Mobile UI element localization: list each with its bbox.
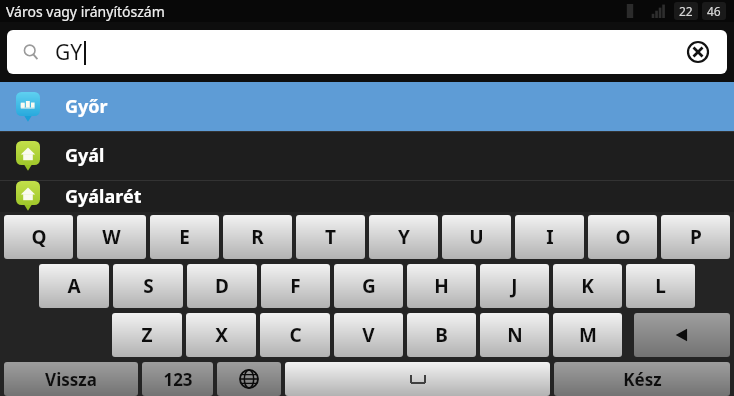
staticText: Y xyxy=(398,224,410,250)
staticText: Város vagy irányítószám xyxy=(6,2,165,21)
button[interactable]: G xyxy=(334,264,403,308)
staticText: L xyxy=(655,273,666,299)
staticText: X xyxy=(215,322,228,348)
staticText: Q xyxy=(31,224,47,250)
staticText: U xyxy=(469,224,484,250)
button[interactable]: D xyxy=(187,264,257,308)
staticText: K xyxy=(581,273,594,299)
staticText: W xyxy=(102,224,121,250)
staticText: R xyxy=(251,224,264,250)
staticText: V xyxy=(362,322,375,348)
button[interactable]: C xyxy=(260,313,330,357)
staticText: J xyxy=(511,273,518,299)
button[interactable]: R xyxy=(223,215,292,259)
button[interactable]: L xyxy=(626,264,695,308)
button[interactable]: F xyxy=(261,264,330,308)
staticText: O xyxy=(615,224,631,250)
staticText: B xyxy=(435,322,448,348)
staticText: S xyxy=(143,273,154,299)
staticText: A xyxy=(67,273,81,299)
button[interactable]: W xyxy=(77,215,146,259)
button[interactable]: GY xyxy=(7,30,727,74)
staticText: GY xyxy=(55,38,83,67)
staticText: Gyálarét xyxy=(65,184,142,209)
button[interactable]: Z xyxy=(112,313,182,357)
button[interactable]: U xyxy=(442,215,511,259)
button[interactable]: J xyxy=(480,264,549,308)
button[interactable]: X xyxy=(186,313,256,357)
staticText: Vissza xyxy=(45,368,97,391)
button[interactable]: Change language xyxy=(217,362,281,396)
button[interactable]: Vissza xyxy=(4,362,138,396)
staticText: M xyxy=(579,322,597,348)
button[interactable]: I xyxy=(515,215,584,259)
staticText: H xyxy=(434,273,449,299)
button[interactable]: Gyálarét xyxy=(0,180,734,212)
button[interactable]: Q xyxy=(4,215,73,259)
button[interactable]: Y xyxy=(369,215,438,259)
button[interactable]: T xyxy=(296,215,365,259)
staticText: C xyxy=(289,322,302,348)
button[interactable]: Gyál xyxy=(0,131,734,180)
button[interactable]: B xyxy=(407,313,476,357)
staticText: T xyxy=(325,224,336,250)
staticText: G xyxy=(362,273,376,299)
staticText: F xyxy=(290,273,301,299)
button[interactable]: 123 xyxy=(142,362,213,396)
staticText: Z xyxy=(141,322,153,348)
button[interactable]: H xyxy=(407,264,476,308)
staticText: 123 xyxy=(163,368,193,391)
button[interactable]: Győr xyxy=(0,82,734,131)
button[interactable]: Kész xyxy=(554,362,730,396)
button[interactable]: P xyxy=(661,215,730,259)
button[interactable]: N xyxy=(480,313,549,357)
button[interactable]: A xyxy=(39,264,109,308)
button[interactable]: E xyxy=(150,215,219,259)
staticText: Gyál xyxy=(65,143,105,168)
staticText: N xyxy=(507,322,523,348)
staticText: Győr xyxy=(65,94,108,119)
staticText: E xyxy=(179,224,190,250)
staticText: P xyxy=(690,224,702,250)
button[interactable]: V xyxy=(334,313,403,357)
staticText: D xyxy=(215,273,229,299)
button[interactable]: S xyxy=(113,264,183,308)
staticText: 22 xyxy=(679,3,693,19)
button[interactable]: Clear text xyxy=(685,39,711,65)
button[interactable]: K xyxy=(553,264,622,308)
staticText: 46 xyxy=(707,3,721,19)
button[interactable]: Backspace xyxy=(634,313,730,357)
staticText: Kész xyxy=(623,368,662,391)
staticText: I xyxy=(546,224,554,250)
button[interactable]: O xyxy=(588,215,657,259)
button[interactable]: M xyxy=(553,313,622,357)
button[interactable]: Space xyxy=(285,362,550,396)
